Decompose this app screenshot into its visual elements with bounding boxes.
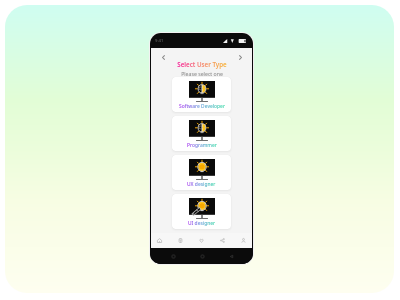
button[interactable]: UX designer [172, 155, 231, 190]
staticText: UX designer [187, 181, 216, 188]
staticText: UI designer [188, 220, 216, 227]
button[interactable]: UI designer [172, 194, 231, 229]
button[interactable]: Home [196, 250, 208, 262]
button[interactable]: Back [225, 250, 237, 262]
button[interactable]: Forward [235, 52, 246, 63]
staticText: Software Developer [179, 103, 225, 110]
staticText: Please select one [181, 70, 223, 77]
button[interactable]: Profile [235, 233, 252, 248]
button[interactable]: Software Developer [172, 77, 231, 112]
staticText: Programmer [187, 142, 217, 149]
staticText: Select User Type [177, 60, 227, 68]
button[interactable]: Dashboard [172, 233, 189, 248]
button[interactable]: Recents [167, 250, 179, 262]
button[interactable]: Programmer [172, 116, 231, 151]
button[interactable]: Favorites [193, 233, 210, 248]
button[interactable]: Share [214, 233, 231, 248]
button[interactable]: Back [158, 52, 169, 63]
staticText: 9:41 [155, 38, 164, 44]
button[interactable]: Home [151, 233, 168, 248]
